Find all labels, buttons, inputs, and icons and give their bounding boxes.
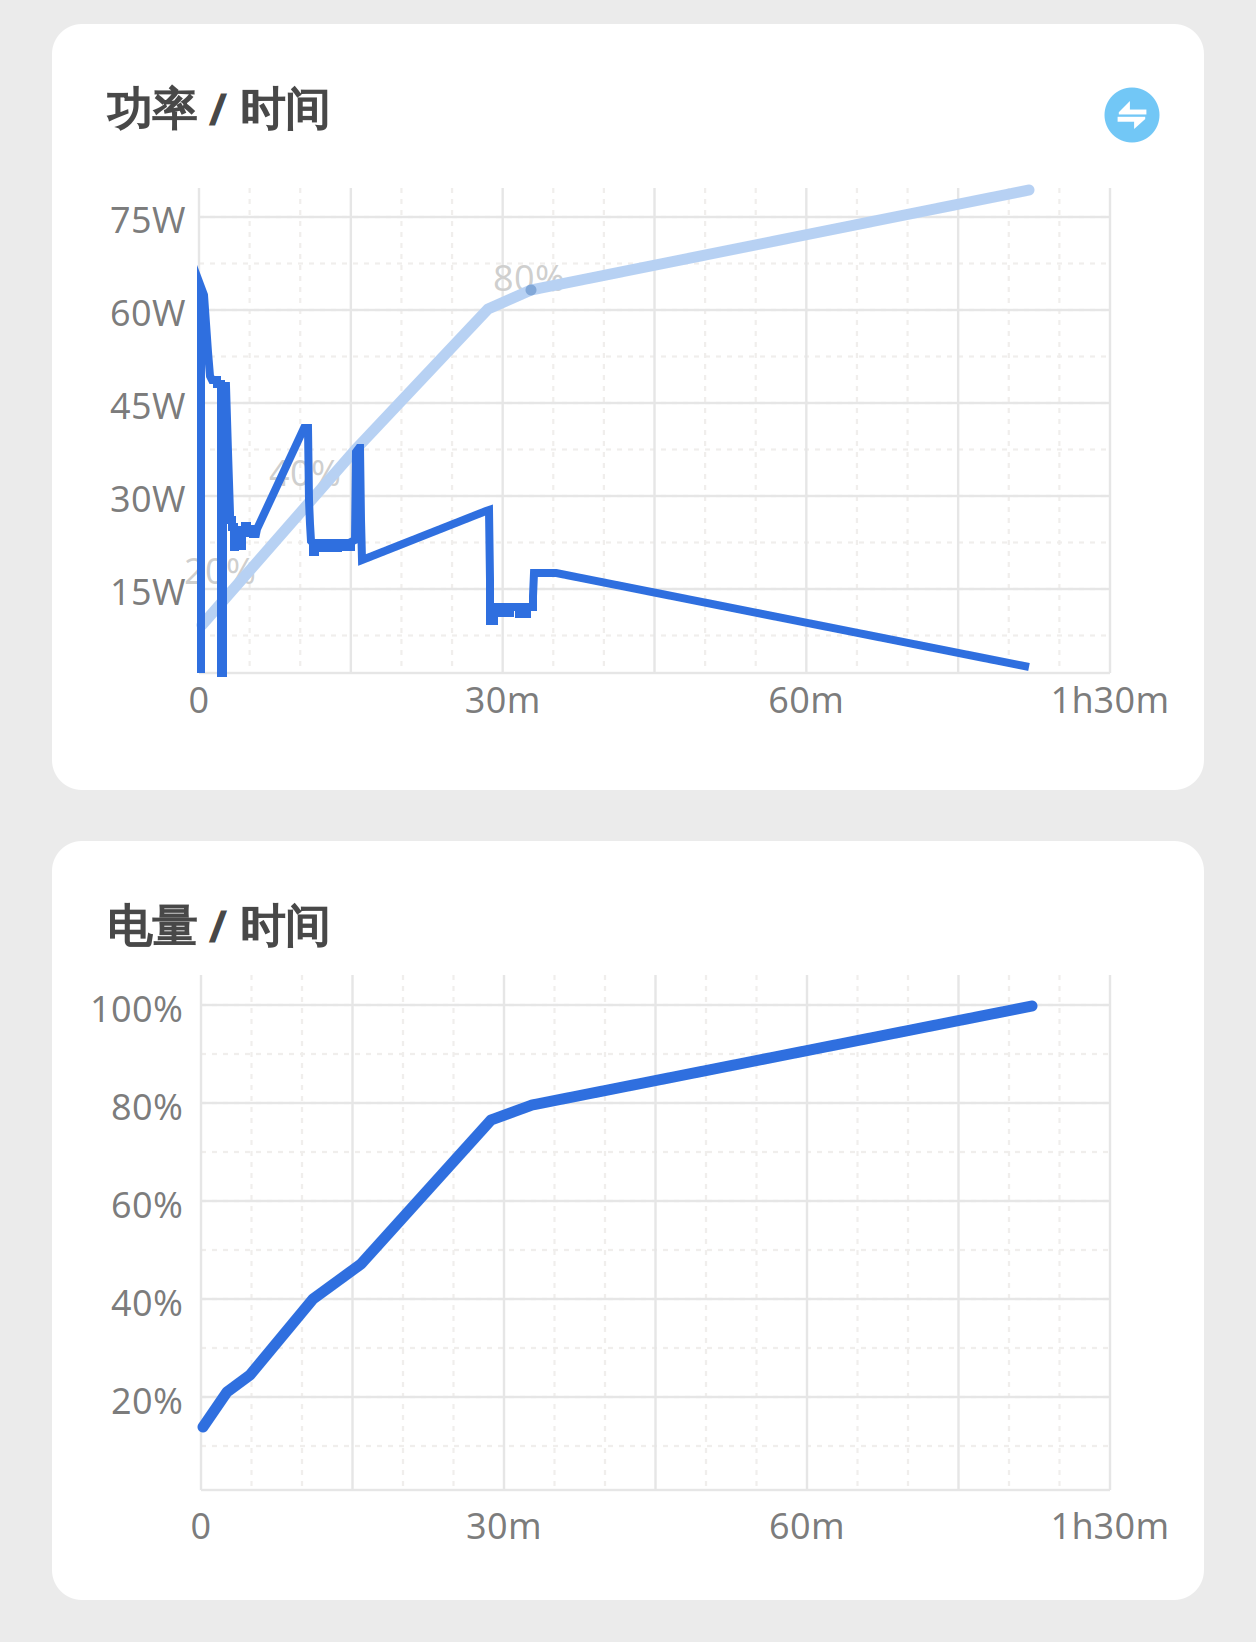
- staticText: 40%: [111, 1278, 183, 1326]
- staticText: 100%: [90, 984, 183, 1032]
- staticText: 60m: [769, 1501, 845, 1549]
- staticText: 15W: [110, 567, 185, 615]
- staticText: 40%: [269, 448, 341, 496]
- staticText: 0: [188, 675, 209, 723]
- staticText: 0: [190, 1501, 211, 1549]
- staticText: 20%: [184, 546, 256, 594]
- button[interactable]: Swap axes: [1104, 87, 1159, 142]
- staticText: 60m: [768, 675, 844, 723]
- staticText: 30m: [465, 675, 541, 723]
- staticText: 1h30m: [1050, 675, 1169, 723]
- staticText: 30W: [110, 474, 185, 522]
- staticText: 45W: [110, 381, 185, 429]
- staticText: 电量 / 时间: [106, 895, 329, 955]
- staticText: 20%: [111, 1376, 183, 1424]
- staticText: 75W: [110, 195, 185, 243]
- staticText: 80%: [493, 253, 565, 301]
- staticText: 80%: [111, 1082, 183, 1130]
- staticText: 60%: [111, 1180, 183, 1228]
- staticText: 功率 / 时间: [106, 78, 329, 138]
- staticText: 1h30m: [1050, 1501, 1169, 1549]
- staticText: 30m: [466, 1501, 542, 1549]
- staticText: 60W: [110, 288, 185, 336]
